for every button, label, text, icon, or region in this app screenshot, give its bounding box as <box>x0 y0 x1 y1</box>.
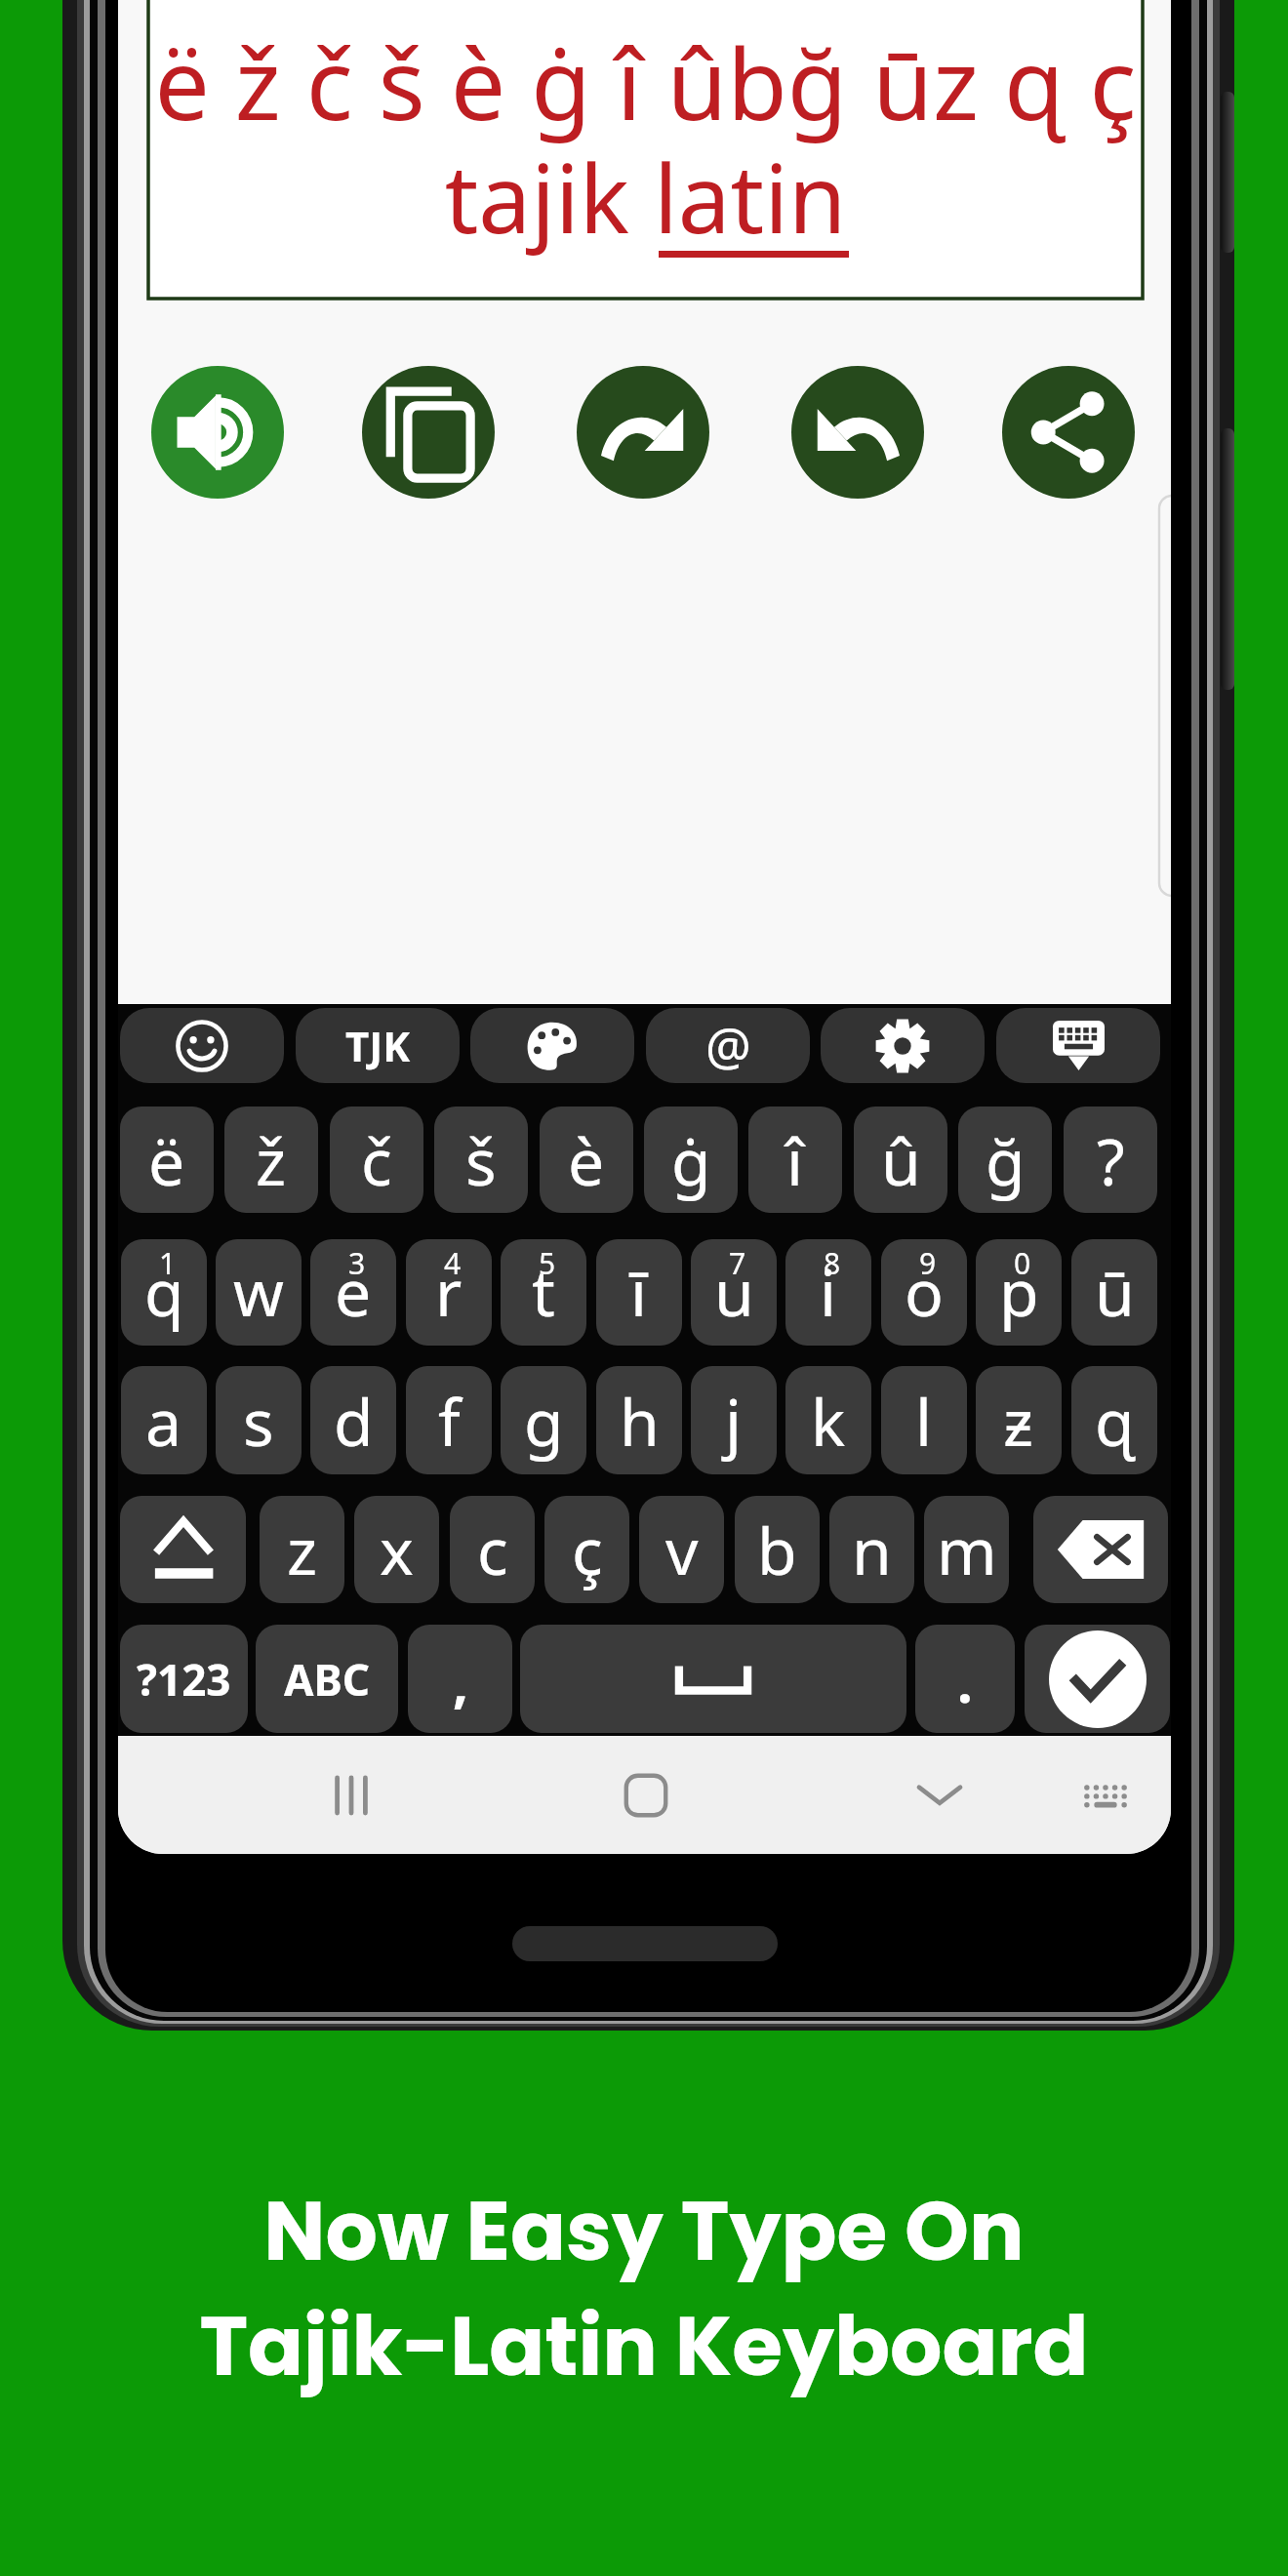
button[interactable]: j <box>691 1366 777 1474</box>
staticText: , <box>453 1644 468 1718</box>
staticText: î <box>786 1116 804 1204</box>
button[interactable]: ū <box>1071 1239 1157 1346</box>
button[interactable]: Emoji <box>120 1008 284 1083</box>
button[interactable]: l <box>881 1366 967 1474</box>
button[interactable]: Shift <box>120 1496 246 1603</box>
button[interactable]: p <box>976 1239 1062 1346</box>
button[interactable]: x <box>354 1496 439 1603</box>
staticText: m <box>937 1506 997 1593</box>
staticText: Tajik-Latin Keyboard <box>0 2289 1288 2404</box>
button[interactable]: ?123 <box>120 1625 248 1733</box>
button[interactable]: i <box>785 1239 871 1346</box>
button[interactable]: ī <box>596 1239 682 1346</box>
button[interactable]: Switch keyboard <box>1049 1736 1162 1854</box>
button[interactable]: c <box>450 1496 535 1603</box>
button[interactable]: Backspace <box>1033 1496 1168 1603</box>
staticText: f <box>438 1377 461 1465</box>
staticText: ī <box>630 1247 648 1335</box>
button[interactable]: ž <box>224 1107 318 1213</box>
button[interactable]: r <box>406 1239 492 1346</box>
button[interactable]: Theme <box>470 1008 634 1083</box>
button[interactable]: z <box>260 1496 344 1603</box>
button[interactable]: Space <box>520 1625 906 1733</box>
button[interactable]: û <box>854 1107 947 1213</box>
staticText: b <box>757 1506 797 1593</box>
staticText: c <box>477 1506 508 1593</box>
button[interactable]: ɋ <box>1071 1366 1157 1474</box>
button[interactable]: TJK <box>296 1008 460 1083</box>
staticText: e <box>335 1247 372 1335</box>
button[interactable]: Recents <box>295 1736 408 1854</box>
staticText: a <box>145 1377 182 1465</box>
button[interactable]: ç <box>544 1496 629 1603</box>
staticText: 4 <box>444 1243 462 1283</box>
staticText: Now Easy Type On <box>0 2174 1288 2289</box>
button[interactable]: Home <box>589 1736 703 1854</box>
staticText: l <box>915 1377 933 1465</box>
button[interactable]: Hide keyboard <box>883 1736 996 1854</box>
staticText: s <box>243 1377 274 1465</box>
staticText: ë ž č š è ġ î ûbğ ūz ɋ ç <box>154 16 1137 148</box>
button[interactable]: Share <box>1002 366 1135 499</box>
button[interactable]: v <box>639 1496 724 1603</box>
staticText: o <box>905 1247 944 1335</box>
button[interactable]: m <box>924 1496 1009 1603</box>
button[interactable]: q <box>121 1239 207 1346</box>
button[interactable]: ABC <box>256 1625 398 1733</box>
staticText: 7 <box>729 1243 746 1283</box>
button[interactable]: n <box>829 1496 914 1603</box>
button[interactable]: . <box>915 1625 1015 1733</box>
button[interactable]: ƶ <box>976 1366 1062 1474</box>
button[interactable]: ğ <box>958 1107 1052 1213</box>
button[interactable]: @ <box>646 1008 810 1083</box>
staticText: tajik latin <box>154 133 1137 261</box>
button[interactable]: e <box>310 1239 396 1346</box>
button[interactable]: Hide keyboard <box>996 1008 1160 1083</box>
staticText: n <box>852 1506 892 1593</box>
button[interactable]: ë <box>120 1107 214 1213</box>
staticText: ? <box>1097 1116 1125 1204</box>
staticText: č <box>361 1116 392 1204</box>
button[interactable]: g <box>501 1366 586 1474</box>
button[interactable]: t <box>501 1239 586 1346</box>
staticText: ġ <box>671 1116 711 1204</box>
button[interactable]: u <box>691 1239 777 1346</box>
staticText: ?123 <box>137 1650 231 1709</box>
staticText: 9 <box>919 1243 937 1283</box>
staticText: p <box>999 1247 1039 1335</box>
button[interactable]: Speak <box>151 366 284 499</box>
button[interactable]: a <box>121 1366 207 1474</box>
button[interactable]: ġ <box>644 1107 738 1213</box>
button[interactable]: Enter <box>1025 1625 1170 1733</box>
button[interactable]: Copy <box>362 366 495 499</box>
button[interactable]: Settings <box>821 1008 985 1083</box>
staticText: 8 <box>824 1243 841 1283</box>
button[interactable]: , <box>408 1625 512 1733</box>
button[interactable]: k <box>785 1366 871 1474</box>
button[interactable]: f <box>406 1366 492 1474</box>
button[interactable]: b <box>735 1496 820 1603</box>
button[interactable]: Undo <box>791 366 924 499</box>
staticText: 3 <box>348 1243 366 1283</box>
staticText: ū <box>1095 1247 1135 1335</box>
button[interactable]: ? <box>1064 1107 1157 1213</box>
button[interactable]: Redo <box>577 366 709 499</box>
button[interactable]: î <box>748 1107 842 1213</box>
button[interactable]: o <box>881 1239 967 1346</box>
button[interactable]: š <box>434 1107 528 1213</box>
button[interactable]: č <box>330 1107 423 1213</box>
staticText: r <box>435 1247 463 1335</box>
staticText: ž <box>256 1116 287 1204</box>
button[interactable]: d <box>310 1366 396 1474</box>
staticText: 5 <box>539 1243 556 1283</box>
button[interactable]: w <box>216 1239 302 1346</box>
staticText: j <box>725 1377 743 1465</box>
staticText: ƶ <box>1003 1377 1034 1465</box>
staticText: ë <box>148 1116 185 1204</box>
staticText: v <box>665 1506 699 1593</box>
button[interactable]: s <box>216 1366 302 1474</box>
staticText: q <box>144 1247 184 1335</box>
button[interactable]: è <box>540 1107 633 1213</box>
button[interactable]: h <box>596 1366 682 1474</box>
staticText: @ <box>705 1011 751 1080</box>
